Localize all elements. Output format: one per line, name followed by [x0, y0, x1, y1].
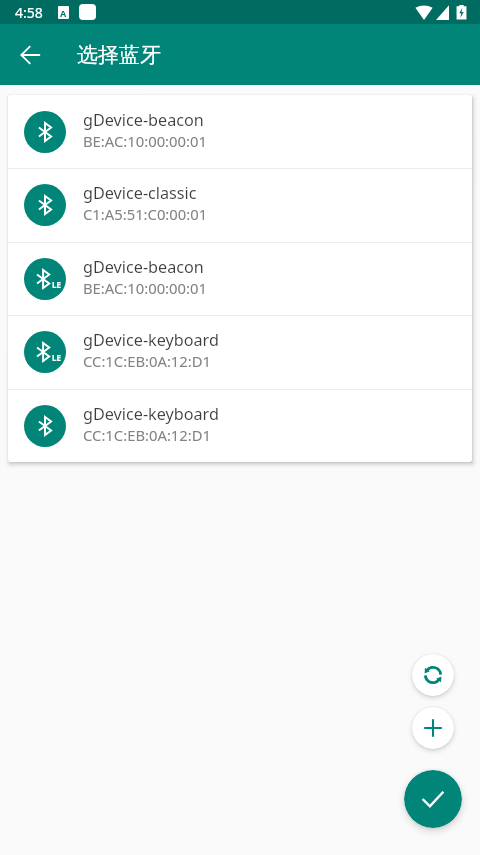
staticText: gDevice-keyboard — [83, 403, 219, 425]
staticText: BE:AC:10:00:00:01 — [83, 131, 207, 151]
staticText: CC:1C:EB:0A:12:D1 — [83, 351, 212, 371]
staticText: gDevice-beacon — [83, 109, 204, 131]
staticText: gDevice-classic — [83, 182, 197, 204]
button[interactable]: Refresh — [412, 654, 454, 696]
button[interactable]: LE — [8, 315, 472, 389]
staticText: LE — [52, 352, 61, 363]
staticText: A — [60, 7, 67, 19]
button[interactable]: LE — [8, 242, 472, 315]
staticText: gDevice-keyboard — [83, 329, 219, 351]
button[interactable]: gDevice-beacon — [8, 95, 472, 168]
staticText: 选择蓝牙 — [77, 42, 161, 68]
staticText: C1:A5:51:C0:00:01 — [83, 204, 208, 224]
staticText: 4:58 — [15, 3, 43, 22]
staticText: CC:1C:EB:0A:12:D1 — [83, 425, 212, 445]
button[interactable]: Add — [412, 707, 454, 749]
staticText: BE:AC:10:00:00:01 — [83, 278, 207, 298]
staticText: LE — [52, 279, 61, 290]
staticText: gDevice-beacon — [83, 256, 204, 278]
button[interactable]: gDevice-classic — [8, 168, 472, 242]
button[interactable]: gDevice-keyboard — [8, 389, 472, 462]
button[interactable]: Back — [10, 35, 50, 75]
button[interactable]: Confirm — [404, 770, 462, 828]
